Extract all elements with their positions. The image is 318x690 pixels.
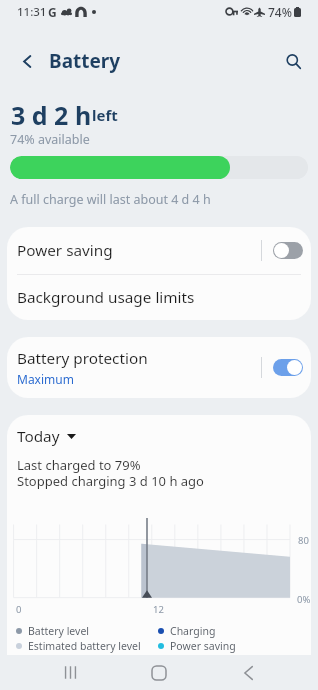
- button[interactable]: Search: [276, 44, 310, 78]
- staticText: Battery protection: [17, 348, 148, 369]
- staticText: 0%: [297, 593, 311, 606]
- staticText: Battery: [49, 48, 121, 74]
- staticText: Power saving: [17, 240, 113, 261]
- staticText: 0: [16, 603, 22, 616]
- staticText: Power saving: [170, 639, 236, 653]
- staticText: 74% available: [10, 131, 90, 148]
- button[interactable]: Off: [273, 242, 303, 259]
- staticText: 3 d 2 h: [11, 98, 92, 132]
- staticText: 11:31: [17, 4, 47, 20]
- staticText: Today: [17, 426, 60, 447]
- staticText: A full charge will last about 4 d 4 h: [10, 191, 211, 208]
- staticText: Background usage limits: [17, 287, 195, 308]
- staticText: Battery level: [28, 624, 90, 638]
- button[interactable]: Battery protection: [7, 337, 311, 398]
- button[interactable]: Back: [230, 655, 266, 690]
- staticText: 80: [298, 534, 309, 547]
- button[interactable]: Home: [141, 655, 177, 690]
- button[interactable]: Power saving: [7, 227, 311, 274]
- staticText: G: [48, 4, 57, 20]
- staticText: Charging: [170, 624, 216, 638]
- button[interactable]: Today: [17, 426, 76, 447]
- staticText: Estimated battery level: [28, 639, 141, 653]
- staticText: 74%: [268, 4, 292, 20]
- staticText: Maximum: [17, 371, 74, 387]
- staticText: 12: [153, 603, 164, 616]
- button[interactable]: Recent apps: [52, 655, 88, 690]
- staticText: Stopped charging 3 d 10 h ago: [17, 472, 204, 490]
- button[interactable]: On: [273, 359, 303, 376]
- button[interactable]: Navigate up: [10, 44, 44, 78]
- staticText: Last charged to 79%: [17, 456, 141, 474]
- button[interactable]: Background usage limits: [7, 275, 311, 320]
- staticText: left: [92, 105, 118, 125]
